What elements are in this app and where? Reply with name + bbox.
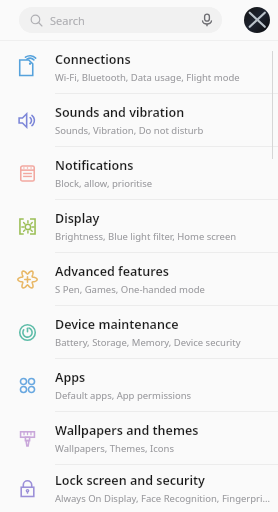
staticText: Display: [55, 210, 100, 227]
staticText: Connections: [55, 51, 131, 68]
staticText: Always On Display, Face Recognition, Fin…: [55, 492, 270, 505]
button[interactable]: Advanced features: [0, 253, 278, 305]
staticText: Sounds, Vibration, Do not disturb: [55, 124, 204, 137]
button[interactable]: Search: [19, 7, 222, 33]
staticText: Apps: [55, 369, 86, 386]
staticText: Device maintenance: [55, 316, 179, 333]
button[interactable]: Connections: [0, 41, 278, 93]
staticText: Advanced features: [55, 263, 169, 280]
staticText: Notifications: [55, 157, 134, 174]
button[interactable]: Notifications: [0, 147, 278, 199]
staticText: Brightness, Blue light filter, Home scre…: [55, 230, 237, 243]
button[interactable]: Voice search: [196, 9, 218, 31]
staticText: Battery, Storage, Memory, Device securit…: [55, 336, 241, 349]
staticText: S Pen, Games, One-handed mode: [55, 283, 205, 296]
staticText: Search: [50, 13, 85, 28]
button[interactable]: Account: [244, 7, 270, 33]
staticText: Wi-Fi, Bluetooth, Data usage, Flight mod…: [55, 71, 240, 84]
button[interactable]: Wallpapers and themes: [0, 412, 278, 464]
button[interactable]: Device maintenance: [0, 306, 278, 358]
staticText: Wallpapers and themes: [55, 422, 199, 439]
button[interactable]: Apps: [0, 359, 278, 411]
button[interactable]: Lock screen and security: [0, 465, 278, 512]
staticText: Sounds and vibration: [55, 104, 185, 121]
staticText: Block, allow, prioritise: [55, 177, 153, 190]
staticText: Default apps, App permissions: [55, 389, 192, 402]
staticText: Lock screen and security: [55, 472, 205, 489]
button[interactable]: Sounds and vibration: [0, 94, 278, 146]
staticText: Wallpapers, Themes, Icons: [55, 442, 175, 455]
button[interactable]: Display: [0, 200, 278, 252]
